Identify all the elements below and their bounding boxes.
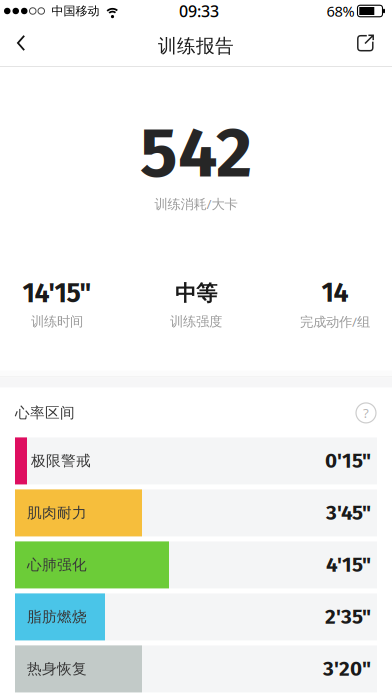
staticText: 中等 — [175, 280, 217, 306]
staticText: 心率区间 — [15, 404, 75, 422]
button[interactable]: 返回 — [0, 20, 44, 66]
staticText: ? — [363, 404, 369, 422]
staticText: 3'45" — [326, 500, 371, 525]
staticText: 训练消耗/大卡 — [154, 195, 237, 213]
staticText: 极限警戒 — [31, 452, 91, 470]
staticText: 14'15" — [22, 277, 91, 309]
staticText: 542 — [140, 111, 252, 195]
staticText: 4'15" — [326, 552, 371, 577]
staticText: 中国移动 — [51, 4, 99, 18]
staticText: 训练强度 — [170, 313, 222, 330]
staticText: 2'35" — [325, 604, 371, 629]
button[interactable]: 心率区间说明 — [356, 403, 376, 423]
staticText: 训练时间 — [31, 313, 83, 330]
staticText: 完成动作/组 — [300, 313, 370, 330]
staticText: 14 — [321, 277, 348, 309]
button[interactable]: 分享 — [344, 20, 392, 66]
staticText: 脂肪燃烧 — [27, 608, 87, 626]
staticText: 心肺强化 — [27, 556, 87, 574]
staticText: 肌肉耐力 — [27, 504, 87, 522]
staticText: 3'20" — [323, 656, 371, 681]
staticText: 09:33 — [179, 0, 219, 22]
staticText: 热身恢复 — [27, 660, 87, 678]
staticText: 训练报告 — [158, 34, 234, 57]
staticText: 68% — [326, 1, 354, 21]
staticText: 0'15" — [325, 448, 371, 473]
